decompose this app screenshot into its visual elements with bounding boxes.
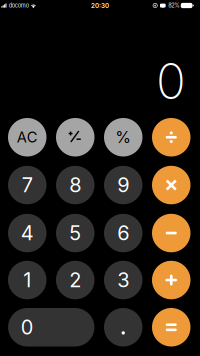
button[interactable]: Divide	[152, 118, 190, 156]
staticText: 1	[23, 268, 31, 292]
button[interactable]: Add	[152, 261, 190, 299]
button[interactable]: Decimal point	[104, 308, 142, 346]
button[interactable]: 1	[8, 261, 46, 299]
staticText: 0	[21, 315, 34, 339]
staticText: 3	[117, 268, 129, 292]
staticText: 82%	[168, 2, 179, 9]
staticText: 0	[156, 51, 186, 111]
staticText: 4	[21, 221, 34, 245]
button[interactable]: 8	[56, 166, 94, 204]
button[interactable]: 5	[56, 214, 94, 252]
button[interactable]: 6	[104, 214, 142, 252]
staticText: docomo	[9, 2, 29, 9]
staticText: AC	[17, 128, 38, 146]
button[interactable]: Multiply	[152, 166, 190, 204]
button[interactable]: Plus minus	[56, 118, 94, 156]
button[interactable]: 3	[104, 261, 142, 299]
button[interactable]: Subtract	[152, 214, 190, 252]
button[interactable]: Percent	[104, 118, 142, 156]
staticText: 8	[69, 173, 81, 197]
staticText: 6	[117, 221, 129, 245]
staticText: 20:30	[91, 2, 109, 9]
button[interactable]: All clear	[8, 118, 46, 156]
button[interactable]: 7	[8, 166, 46, 204]
staticText: 9	[117, 173, 129, 197]
staticText: 2	[69, 268, 81, 292]
button[interactable]: 4	[8, 214, 46, 252]
staticText: %	[115, 128, 131, 147]
staticText: 5	[69, 221, 81, 245]
staticText: 7	[22, 173, 33, 197]
button[interactable]: Equals	[152, 308, 190, 346]
button[interactable]: 9	[104, 166, 142, 204]
button[interactable]: 2	[56, 261, 94, 299]
button[interactable]: 0	[8, 308, 94, 346]
